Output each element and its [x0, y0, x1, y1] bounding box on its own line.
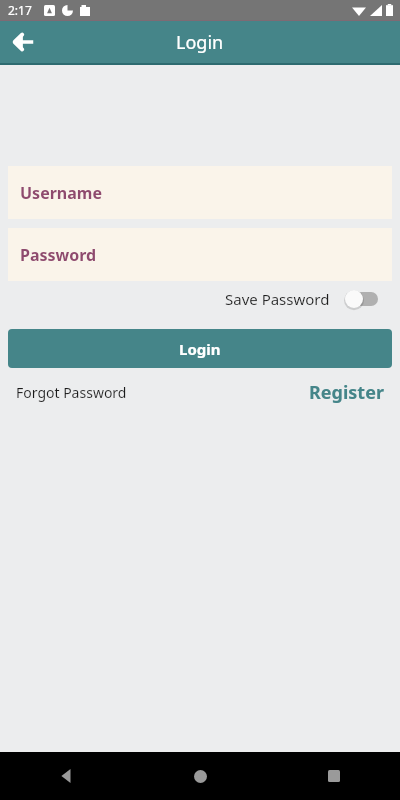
- staticText: Login: [176, 30, 224, 55]
- button[interactable]: Login: [8, 329, 392, 368]
- staticText: Password: [20, 244, 97, 266]
- button[interactable]: Home: [134, 752, 267, 800]
- staticText: Save Password: [225, 289, 330, 309]
- staticText: Forgot Password: [16, 383, 127, 402]
- staticText: Register: [309, 380, 384, 405]
- staticText: Login: [179, 339, 221, 359]
- button[interactable]: Back: [6, 24, 42, 60]
- button[interactable]: Register: [309, 378, 384, 407]
- button[interactable]: Back: [0, 752, 134, 800]
- button[interactable]: Username: [8, 166, 392, 219]
- staticText: Username: [20, 182, 102, 204]
- button[interactable]: Password: [8, 228, 392, 281]
- staticText: 2:17: [8, 2, 32, 18]
- button[interactable]: Recents: [267, 752, 400, 800]
- button[interactable]: Save Password toggle: [344, 288, 380, 310]
- button[interactable]: Forgot Password: [16, 381, 127, 404]
